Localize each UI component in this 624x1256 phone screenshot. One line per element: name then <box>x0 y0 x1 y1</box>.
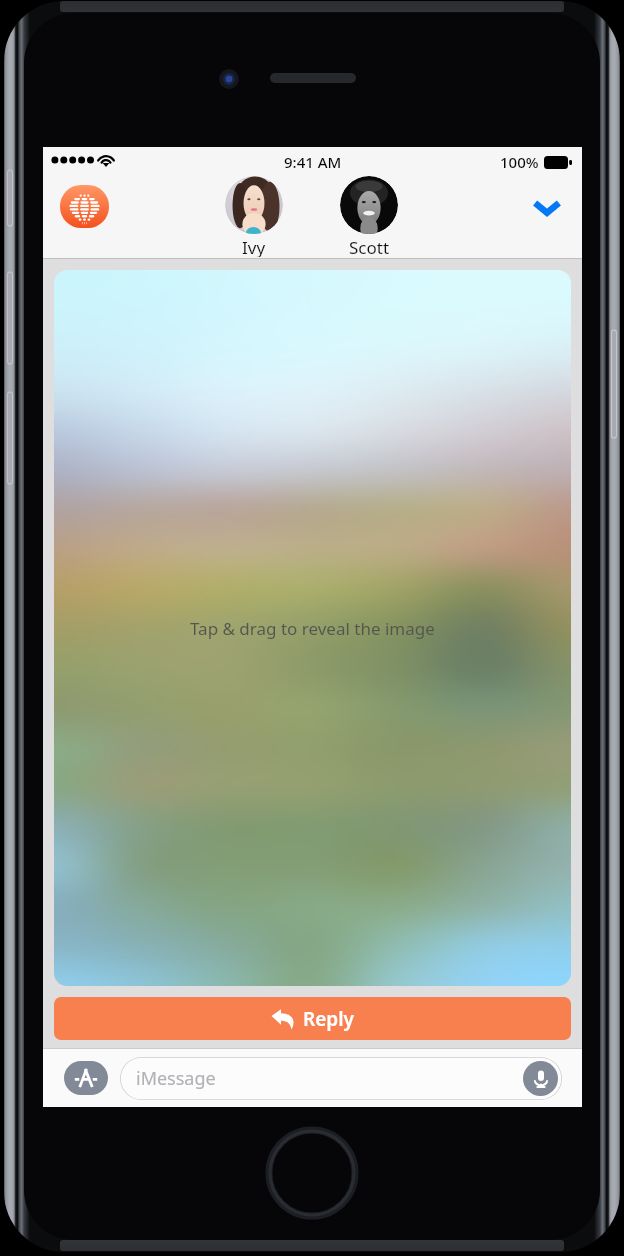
button[interactable]: Collapse details <box>525 185 569 229</box>
button[interactable]: Ivy <box>225 176 283 234</box>
button[interactable]: Messages app <box>60 185 109 228</box>
button[interactable]: Reply <box>54 997 571 1040</box>
staticText: Reply <box>303 1006 355 1032</box>
staticText: Ivy <box>242 236 266 257</box>
staticText: Tap & drag to reveal the image <box>190 617 435 640</box>
button[interactable]: iMessage <box>120 1057 562 1100</box>
button[interactable]: Scott <box>340 176 398 234</box>
staticText: Scott <box>349 236 390 257</box>
staticText: 100% <box>500 152 539 172</box>
button[interactable]: Dictate <box>523 1061 558 1096</box>
button[interactable]: App Store apps <box>64 1061 108 1095</box>
staticText: 9:41 AM <box>284 152 342 172</box>
staticText: iMessage <box>136 1066 216 1091</box>
